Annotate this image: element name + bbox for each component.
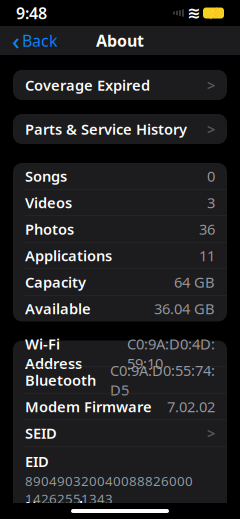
staticText: C0:9A:D0:55:74:D5 <box>110 360 215 399</box>
staticText: 36.04 GB <box>154 299 215 318</box>
staticText: Applications <box>25 246 112 265</box>
staticText: 11 <box>199 246 215 265</box>
button[interactable]: EID <box>13 446 227 512</box>
staticText: Parts & Service History <box>25 119 187 139</box>
staticText: EID <box>25 451 49 471</box>
button[interactable]: Videos <box>13 189 227 215</box>
staticText: C0:9A:D0:4D:59:10 <box>127 334 215 373</box>
staticText: SEID <box>25 423 57 443</box>
staticText: Available <box>25 299 91 318</box>
button[interactable]: Bluetooth <box>13 367 227 393</box>
staticText: ≋ <box>187 4 200 22</box>
staticText: Songs <box>25 166 67 186</box>
staticText: Coverage Expired <box>25 75 150 95</box>
staticText: Photos <box>25 219 74 239</box>
staticText: Videos <box>25 193 72 212</box>
button[interactable]: Coverage Expired <box>13 70 227 100</box>
staticText: Back <box>22 30 58 51</box>
staticText: Modem Firmware <box>25 397 152 416</box>
button[interactable]: Applications <box>13 242 227 268</box>
staticText: 36 <box>199 219 215 239</box>
staticText: 64 GB <box>174 272 215 292</box>
staticText: > <box>207 423 215 443</box>
staticText: About <box>96 30 144 51</box>
button[interactable]: SEID <box>13 420 227 446</box>
staticText: 9:48 <box>16 2 47 24</box>
button[interactable]: ‹ <box>4 26 66 54</box>
button[interactable]: Wi-Fi Address <box>13 340 227 366</box>
button[interactable]: Photos <box>13 216 227 242</box>
staticText: Wi-Fi Address <box>25 334 82 373</box>
staticText: ⚡ <box>207 7 220 19</box>
staticText: Capacity <box>25 272 86 292</box>
staticText: > <box>207 119 215 139</box>
staticText: 3 <box>207 193 215 212</box>
staticText: ‹ <box>12 25 20 56</box>
button[interactable]: Available <box>13 295 227 321</box>
staticText: 0 <box>207 166 215 186</box>
staticText: Bluetooth <box>25 370 96 390</box>
button[interactable]: Modem Firmware <box>13 393 227 419</box>
button[interactable]: Parts & Service History <box>13 114 227 144</box>
staticText: > <box>207 75 215 95</box>
button[interactable]: Songs <box>13 163 227 189</box>
button[interactable]: Capacity <box>13 269 227 295</box>
staticText: 7.02.02 <box>167 397 215 416</box>
staticText: Network Provider Lock <box>25 497 88 519</box>
staticText: 89049032004008882600014262551343 <box>25 472 193 507</box>
